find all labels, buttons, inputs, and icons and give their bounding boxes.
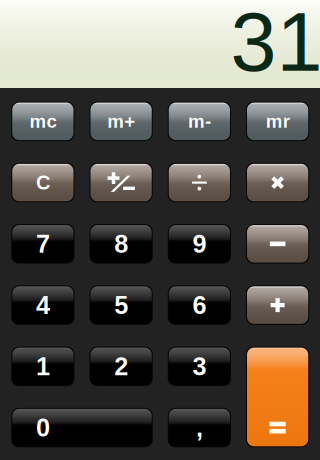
button[interactable]: 9 — [168, 224, 231, 264]
staticText: 8 — [114, 230, 128, 258]
button[interactable]: Memory clear — [11, 102, 74, 141]
staticText: 9 — [192, 230, 206, 258]
staticText: 5 — [114, 291, 128, 319]
staticText: 6 — [192, 291, 206, 319]
staticText: 2 — [114, 352, 128, 380]
button[interactable]: 6 — [168, 285, 231, 325]
button[interactable]: Memory subtract — [168, 102, 231, 141]
staticText: C — [36, 171, 50, 194]
button[interactable]: 0 — [11, 408, 153, 447]
staticText: m- — [188, 111, 211, 132]
button[interactable]: 2 — [89, 347, 153, 386]
button[interactable]: 8 — [89, 224, 153, 264]
staticText: 1 — [36, 352, 50, 380]
staticText: mc — [29, 111, 56, 132]
button[interactable]: Subtract — [246, 224, 309, 264]
staticText: mr — [266, 111, 290, 132]
staticText: 3 — [192, 352, 206, 380]
button[interactable]: 5 — [89, 285, 153, 325]
staticText: 0 — [36, 413, 50, 442]
staticText: m+ — [107, 111, 135, 132]
button[interactable]: Add — [246, 285, 309, 325]
button[interactable]: Clear — [11, 163, 74, 202]
button[interactable]: Divide — [168, 163, 231, 202]
button[interactable]: 4 — [11, 285, 74, 325]
button[interactable]: Equals — [246, 347, 309, 447]
button[interactable]: Change sign — [89, 163, 153, 202]
staticText: , — [196, 413, 203, 442]
staticText: 31 — [230, 0, 320, 88]
button[interactable]: 7 — [11, 224, 74, 264]
staticText: 4 — [36, 291, 50, 319]
button[interactable]: Memory recall — [246, 102, 309, 141]
button[interactable]: Memory add — [89, 102, 153, 141]
button[interactable]: 1 — [11, 347, 74, 386]
button[interactable]: Decimal point — [168, 408, 231, 447]
button[interactable]: Multiply — [246, 163, 309, 202]
button[interactable]: 3 — [168, 347, 231, 386]
staticText: 7 — [36, 230, 50, 258]
